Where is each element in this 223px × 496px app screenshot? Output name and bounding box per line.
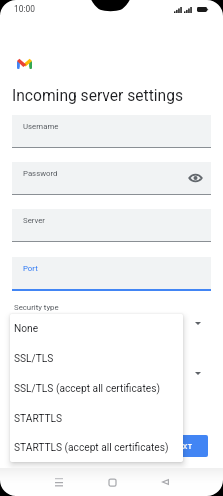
staticText: Server — [23, 216, 45, 225]
button[interactable]: SSL/TLS (accept all certificates) — [10, 374, 183, 404]
staticText: Username — [23, 122, 59, 131]
staticText: 10:00 — [14, 4, 35, 14]
button[interactable]: SSL/TLS — [10, 344, 183, 374]
button[interactable]: NEXT — [158, 435, 208, 457]
button[interactable]: STARTTLS (accept all certificates) — [10, 434, 183, 462]
staticText: Incoming server settings — [12, 87, 183, 105]
staticText: NEXT — [173, 442, 193, 450]
button[interactable]: Home — [94, 468, 130, 496]
button[interactable]: None — [10, 314, 183, 344]
staticText: SSL/TLS (accept all certificates) — [14, 383, 160, 395]
button[interactable]: Port — [12, 257, 211, 289]
button[interactable]: Password — [12, 162, 211, 194]
button[interactable]: Open dropdown — [189, 364, 207, 382]
staticText: STARTTLS (accept all certificates) — [14, 442, 169, 454]
staticText: STARTTLS — [14, 413, 63, 425]
button[interactable]: Username — [12, 115, 211, 147]
staticText: Security type — [14, 303, 59, 312]
staticText: Password — [23, 169, 58, 178]
button[interactable]: STARTTLS — [10, 404, 183, 434]
button[interactable]: Show password — [186, 169, 204, 187]
button[interactable]: Server — [12, 209, 211, 241]
button[interactable]: Open dropdown — [189, 314, 207, 332]
button[interactable]: Recents — [41, 468, 77, 496]
staticText: Port — [23, 264, 38, 273]
button[interactable]: Back — [147, 468, 183, 496]
staticText: None — [14, 323, 39, 335]
staticText: SSL/TLS — [14, 353, 54, 365]
